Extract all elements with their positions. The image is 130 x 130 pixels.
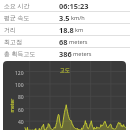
button[interactable]: 거리: [0, 24, 130, 36]
staticText: 120: [15, 70, 24, 77]
staticText: meter: [8, 98, 15, 112]
staticText: 평균 속도: [4, 14, 30, 22]
button[interactable]: 소요 시간: [0, 0, 130, 12]
button[interactable]: 평균 속도: [0, 12, 130, 24]
staticText: 최고점: [4, 38, 22, 46]
button[interactable]: 총 획득고도: [0, 48, 130, 60]
staticText: 거리: [4, 26, 16, 34]
staticText: 60: [18, 107, 24, 114]
staticText: km/h: [71, 14, 85, 22]
staticText: 총 획득고도: [4, 50, 36, 58]
staticText: meters: [73, 50, 92, 58]
button[interactable]: 최고점: [0, 36, 130, 48]
staticText: km: [75, 26, 84, 34]
staticText: 3.5: [59, 13, 70, 23]
staticText: 소요 시간: [4, 2, 30, 10]
staticText: 68: [59, 37, 68, 47]
staticText: 40: [18, 119, 24, 126]
staticText: 18.8: [59, 25, 74, 35]
staticText: 100: [15, 82, 24, 89]
staticText: 386: [59, 49, 72, 59]
staticText: 06:15:23: [59, 1, 89, 11]
staticText: meters: [69, 38, 88, 46]
staticText: 80: [18, 94, 24, 101]
staticText: 고도: [60, 67, 70, 73]
